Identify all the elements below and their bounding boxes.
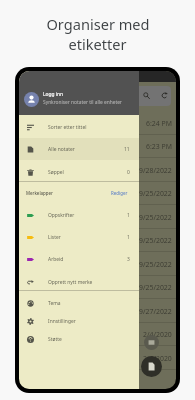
staticText: 1 [127, 234, 130, 241]
staticText: etiketter [68, 34, 127, 54]
button[interactable]: Lister [19, 226, 139, 248]
button[interactable]: Alle notater [19, 138, 139, 160]
button[interactable]: Logg inn [19, 71, 139, 115]
staticText: Arbeid [48, 256, 64, 263]
button[interactable]: Rediger [111, 190, 128, 196]
staticText: Rediger [111, 190, 128, 196]
button[interactable]: New image note [144, 335, 159, 350]
staticText: 2/4/2020 [143, 354, 172, 363]
button[interactable]: Sorter etter tittel [19, 116, 139, 138]
staticText: Støtte [48, 336, 62, 343]
button[interactable]: 9/25/2022 [19, 275, 176, 299]
button[interactable]: 2/4/2020 [19, 322, 176, 346]
button[interactable]: 9/25/2022 [19, 252, 176, 276]
button[interactable]: Søppel [19, 161, 139, 183]
staticText: 9/25/2022 [139, 189, 172, 198]
staticText: Opprett nytt merke [48, 279, 93, 286]
staticText: 0 [127, 169, 130, 176]
button[interactable]: 2/4/2020 [19, 346, 176, 370]
staticText: 9/25/2022 [139, 213, 172, 222]
staticText: Lister [48, 234, 61, 241]
staticText: Oppskrifter [48, 212, 75, 219]
staticText: 6:24 PM [146, 119, 172, 128]
staticText: Logg inn [43, 91, 63, 98]
staticText: Innstillinger [48, 318, 76, 325]
button[interactable]: Arbeid [19, 248, 139, 270]
staticText: 9/25/2022 [139, 260, 172, 269]
staticText: 9/27/2022 [139, 307, 172, 316]
staticText: 9/25/2022 [139, 236, 172, 245]
staticText: Alle notater [48, 146, 75, 153]
staticText: Merkelapper [26, 190, 53, 196]
button[interactable]: 9/28/2022 [19, 158, 176, 182]
button[interactable]: Støtte [19, 328, 139, 350]
button[interactable]: Opprett nytt merke [19, 271, 139, 293]
button[interactable]: New note [141, 356, 162, 377]
button[interactable]: Search [24, 86, 171, 106]
button[interactable]: 9/25/2022 [19, 205, 176, 229]
staticText: Sorter etter tittel [48, 124, 87, 131]
button[interactable]: Innstillinger [19, 310, 139, 332]
staticText: 2/4/2020 [143, 330, 172, 339]
staticText: 11 [124, 146, 130, 153]
button[interactable]: Tema [19, 292, 139, 314]
staticText: Organiser med [46, 14, 150, 34]
button[interactable]: 6:23 PM [19, 134, 176, 158]
button[interactable]: Oppskrifter [19, 204, 139, 226]
staticText: Synkroniser notater til alle enheter [43, 99, 122, 106]
staticText: 6:23 PM [146, 142, 172, 151]
staticText: Søppel [48, 169, 64, 176]
button[interactable]: 9/27/2022 [19, 299, 176, 323]
staticText: 1 [127, 212, 130, 219]
staticText: Tema [48, 300, 61, 307]
staticText: 9/25/2022 [139, 283, 172, 292]
button[interactable]: 9/25/2022 [19, 181, 176, 205]
staticText: 3 [127, 256, 130, 263]
staticText: 9/28/2022 [139, 166, 172, 175]
button[interactable]: 9/25/2022 [19, 228, 176, 252]
button[interactable]: 6:24 PM [19, 111, 176, 135]
